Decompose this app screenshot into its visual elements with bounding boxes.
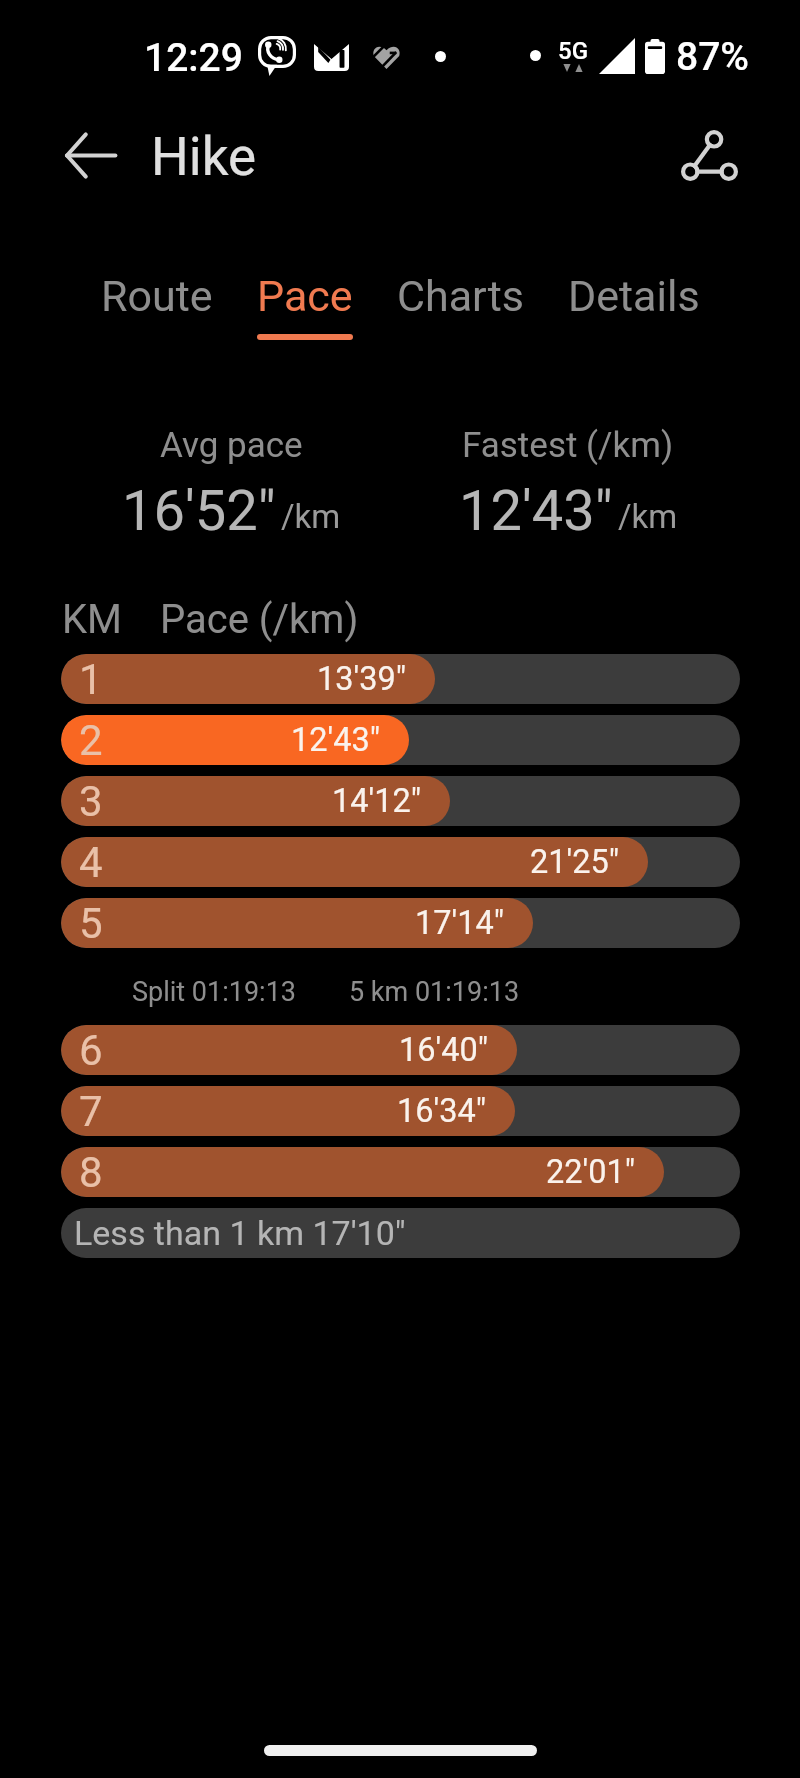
button[interactable]: Charts bbox=[375, 271, 546, 340]
button[interactable]: Pace bbox=[235, 271, 375, 340]
staticText: Less than 1 km 17'10" bbox=[74, 1213, 406, 1253]
staticText: 21'25" bbox=[530, 843, 620, 881]
button[interactable]: Route bbox=[79, 271, 235, 340]
staticText: 13'39" bbox=[317, 660, 407, 698]
button[interactable]: 6 bbox=[61, 1025, 740, 1075]
staticText: Avg pace bbox=[160, 425, 303, 466]
staticText: 12'43" bbox=[459, 478, 613, 544]
staticText: Pace (/km) bbox=[160, 596, 359, 643]
staticText: 3 bbox=[79, 777, 103, 826]
staticText: 22'01" bbox=[546, 1153, 636, 1191]
staticText: Fastest (/km) bbox=[462, 425, 674, 466]
button[interactable]: Less than 1 km 17'10" bbox=[61, 1208, 740, 1258]
button[interactable]: 1 bbox=[61, 654, 740, 704]
staticText: Hike bbox=[151, 126, 257, 188]
button[interactable]: Share bbox=[673, 119, 745, 191]
button[interactable]: 4 bbox=[61, 837, 740, 887]
button[interactable]: Details bbox=[546, 271, 722, 340]
staticText: 1 bbox=[79, 655, 103, 704]
staticText: Split 01:19:13 bbox=[132, 976, 296, 1008]
button[interactable]: 3 bbox=[61, 776, 740, 826]
staticText: 16'52" bbox=[122, 478, 276, 544]
staticText: Charts bbox=[397, 271, 524, 321]
staticText: 17'14" bbox=[415, 904, 505, 942]
staticText: 14'12" bbox=[332, 782, 422, 820]
staticText: 4 bbox=[79, 838, 103, 887]
staticText: 8 bbox=[79, 1148, 103, 1197]
staticText: 5 bbox=[79, 899, 103, 948]
button[interactable]: 5 bbox=[61, 898, 740, 948]
staticText: 16'34" bbox=[397, 1092, 487, 1130]
staticText: Pace bbox=[257, 271, 353, 321]
staticText: KM bbox=[62, 596, 123, 643]
staticText: 12'43" bbox=[291, 721, 381, 759]
staticText: 12:29 bbox=[144, 35, 243, 81]
staticText: 5 km 01:19:13 bbox=[349, 976, 520, 1008]
staticText: 5G bbox=[558, 37, 588, 65]
staticText: /km bbox=[618, 497, 678, 536]
button[interactable]: 7 bbox=[61, 1086, 740, 1136]
staticText: 87% bbox=[676, 34, 750, 80]
staticText: 16'40" bbox=[399, 1031, 489, 1069]
button[interactable]: 8 bbox=[61, 1147, 740, 1197]
staticText: /km bbox=[281, 497, 341, 536]
staticText: Route bbox=[101, 271, 213, 321]
staticText: 7 bbox=[79, 1087, 103, 1136]
button[interactable]: 2 bbox=[61, 715, 740, 765]
staticText: 6 bbox=[79, 1026, 103, 1075]
staticText: 2 bbox=[79, 716, 103, 765]
staticText: Details bbox=[568, 271, 700, 321]
button[interactable]: Back bbox=[57, 121, 125, 189]
